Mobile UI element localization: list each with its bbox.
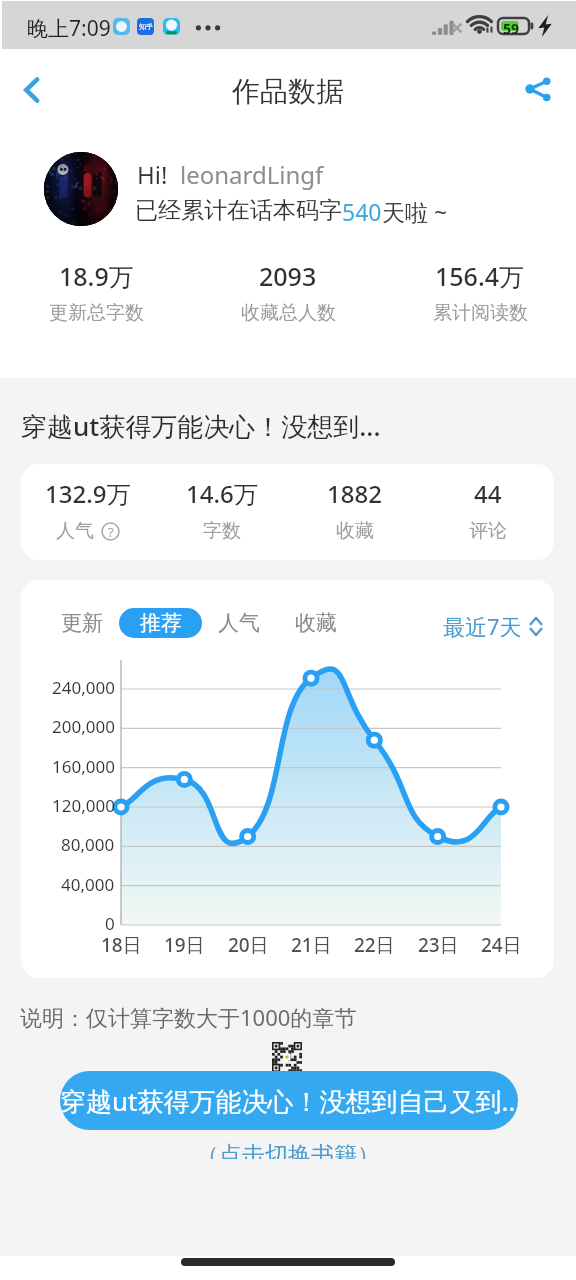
staticText: 21日 [291,932,332,958]
staticText: 穿越ut获得万能决心！没想到... [21,408,381,444]
staticText: 更新 [61,610,103,636]
staticText: 44 [474,477,502,510]
staticText: 14.6万 [186,477,258,510]
staticText: 累计阅读数 [433,301,528,325]
staticText: 59 [503,19,520,38]
staticText: 22日 [354,932,395,958]
staticText: 2093 [259,259,317,293]
staticText: 40,000 [61,873,115,896]
staticText: 1882 [327,477,382,510]
staticText: 人气 [56,519,94,543]
button[interactable]: Back [4,60,62,118]
button[interactable]: 最近7天 [443,611,543,641]
button[interactable]: 132.9万 [21,464,554,560]
staticText: 收藏 [295,610,337,636]
button[interactable]: 穿越ut获得万能决心！没想到自己又到... [60,1071,518,1130]
button[interactable]: Share [510,61,566,117]
staticText: 人气 [218,610,260,636]
staticText: 240,000 [52,676,115,699]
staticText: 540 [342,196,382,227]
staticText: 132.9万 [45,477,131,510]
staticText: 评论 [469,519,507,543]
staticText: 200,000 [52,715,115,738]
staticText: leonardLingf [180,158,324,191]
staticText: 20日 [228,932,269,958]
staticText: 已经累计在话本码字 [135,196,342,225]
staticText: （点击切换书籍） [0,1141,576,1159]
staticText: 19日 [164,932,205,958]
staticText: 天啦 ~ [382,196,448,227]
staticText: 说明：仅计算字数大于1000的章节 [20,1002,357,1032]
staticText: 作品数据 [232,74,344,109]
staticText: 120,000 [52,794,115,817]
staticText: Hi! [137,158,168,191]
staticText: ? [108,523,114,541]
staticText: 收藏总人数 [241,301,336,325]
staticText: 晚上7:09 [27,14,111,43]
staticText: 160,000 [52,755,115,778]
button[interactable]: 收藏 [286,608,346,638]
staticText: 字数 [203,519,241,543]
button[interactable]: 人气 [209,608,269,638]
staticText: 更新总字数 [49,301,144,325]
staticText: 0 [105,912,115,935]
staticText: 推荐 [140,610,182,636]
staticText: 24日 [481,932,522,958]
staticText: 18.9万 [59,259,134,293]
staticText: 23日 [418,932,459,958]
button[interactable]: 更新 [52,608,112,638]
staticText: 穿越ut获得万能决心！没想到自己又到... [60,1083,518,1119]
button[interactable]: 推荐 [119,608,202,638]
staticText: 18日 [101,932,142,958]
staticText: 知乎 [139,22,153,31]
staticText: 80,000 [61,833,115,856]
staticText: 156.4万 [435,259,525,293]
staticText: 收藏 [336,519,374,543]
staticText: 最近7天 [443,611,522,641]
